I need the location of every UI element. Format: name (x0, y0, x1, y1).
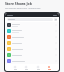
button[interactable]: Search (7, 18, 53, 21)
staticText: the everyday detail store · updated dail… (5, 7, 64, 10)
staticText: Store Shows Job (5, 1, 64, 6)
button[interactable]: Saved (35, 66, 41, 70)
button[interactable] (5, 40, 59, 46)
button[interactable] (5, 34, 59, 40)
button[interactable] (5, 22, 59, 28)
button[interactable] (5, 46, 59, 52)
button[interactable]: Filter (54, 18, 57, 21)
button[interactable] (5, 52, 59, 58)
button[interactable] (5, 28, 59, 34)
button[interactable]: Browse (23, 66, 29, 70)
button[interactable] (5, 58, 59, 64)
button[interactable]: Home (12, 66, 18, 70)
button[interactable]: Profile (46, 66, 52, 70)
